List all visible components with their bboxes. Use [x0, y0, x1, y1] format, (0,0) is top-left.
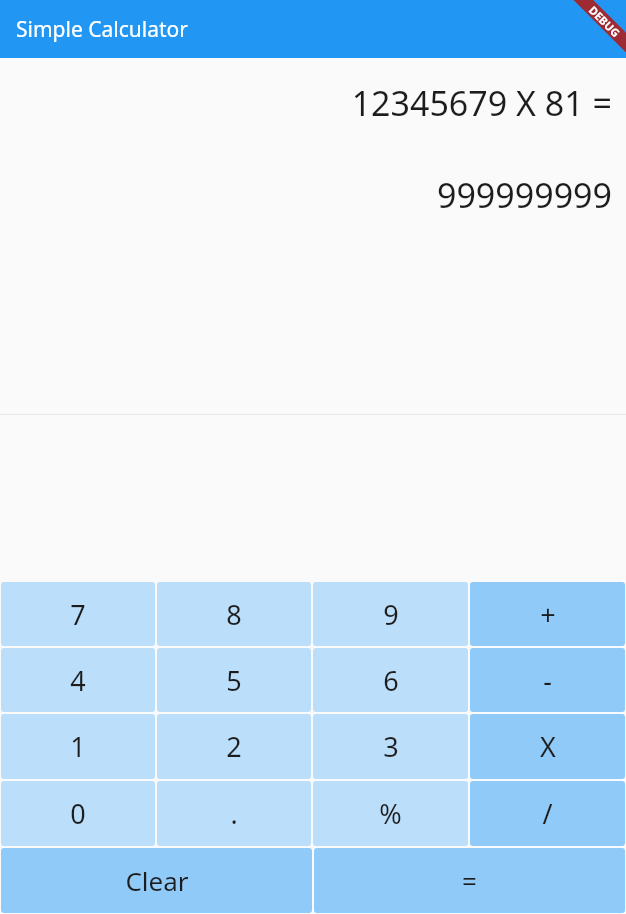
button[interactable]: X — [470, 714, 625, 779]
button[interactable]: 5 — [157, 648, 311, 712]
button[interactable]: 8 — [157, 582, 311, 646]
button[interactable]: Clear — [1, 848, 312, 913]
staticText: 9 — [383, 596, 399, 633]
button[interactable]: 4 — [1, 648, 155, 712]
button[interactable]: 7 — [1, 582, 155, 646]
staticText: 4 — [70, 662, 86, 699]
button[interactable]: 1 — [1, 714, 155, 779]
staticText: 7 — [70, 596, 86, 633]
staticText: + — [540, 596, 556, 633]
staticText: 3 — [383, 728, 399, 765]
button[interactable]: . — [157, 781, 311, 846]
staticText: X — [540, 728, 556, 765]
staticText: - — [543, 662, 552, 699]
button[interactable]: + — [470, 582, 625, 646]
button[interactable]: 3 — [313, 714, 468, 779]
staticText: . — [230, 795, 238, 832]
button[interactable]: 2 — [157, 714, 311, 779]
staticText: 0 — [70, 795, 86, 832]
staticText: 12345679 X 81 = — [351, 80, 612, 126]
staticText: 5 — [226, 662, 242, 699]
staticText: Simple Calculator — [16, 15, 188, 44]
staticText: Clear — [125, 863, 189, 898]
button[interactable]: = — [314, 848, 625, 913]
staticText: / — [542, 795, 553, 832]
staticText: 1 — [70, 728, 86, 765]
staticText: 999999999 — [436, 172, 612, 218]
staticText: 2 — [226, 728, 242, 765]
staticText: % — [379, 795, 402, 832]
staticText: 6 — [383, 662, 399, 699]
button[interactable]: 9 — [313, 582, 468, 646]
staticText: 8 — [226, 596, 242, 633]
staticText: = — [462, 863, 477, 898]
button[interactable]: / — [470, 781, 625, 846]
button[interactable]: % — [313, 781, 468, 846]
button[interactable]: 6 — [313, 648, 468, 712]
button[interactable]: - — [470, 648, 625, 712]
button[interactable]: 0 — [1, 781, 155, 846]
